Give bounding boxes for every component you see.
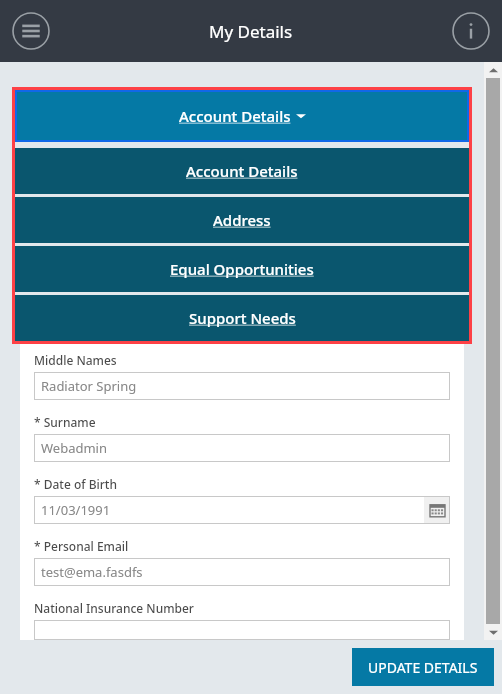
button[interactable]: Equal Opportunities	[15, 246, 469, 292]
staticText: Webadmin	[41, 439, 450, 457]
button[interactable]: Pick date	[424, 496, 450, 524]
button[interactable]: 11/03/1991	[34, 496, 450, 524]
button[interactable]	[34, 620, 450, 640]
staticText: My Details	[209, 20, 293, 43]
staticText: Account Details	[179, 106, 291, 126]
staticText: Radiator Spring	[41, 377, 450, 395]
button[interactable]: Radiator Spring	[34, 372, 450, 400]
staticText: * Surname	[34, 414, 96, 430]
staticText: Address	[213, 210, 271, 230]
staticText: Equal Opportunities	[170, 259, 314, 279]
button[interactable]: test@ema.fasdfs	[34, 558, 450, 586]
button[interactable]: Information	[448, 8, 494, 54]
staticText: * Personal Email	[34, 538, 129, 554]
staticText: * Date of Birth	[34, 476, 117, 492]
staticText: Support Needs	[189, 308, 296, 328]
staticText: National Insurance Number	[34, 600, 194, 616]
staticText: 11/03/1991	[41, 501, 424, 519]
button[interactable]: UPDATE DETAILS	[352, 648, 494, 686]
button[interactable]: Support Needs	[15, 295, 469, 341]
button[interactable]: Address	[15, 197, 469, 243]
staticText: UPDATE DETAILS	[368, 658, 478, 677]
button[interactable]: Menu	[8, 8, 54, 54]
staticText: Middle Names	[34, 352, 117, 368]
staticText: Account Details	[186, 161, 298, 181]
button[interactable]: Account Details	[15, 148, 469, 194]
button[interactable]: Webadmin	[34, 434, 450, 462]
staticText: test@ema.fasdfs	[41, 563, 450, 581]
button[interactable]: Account Details	[17, 92, 467, 140]
